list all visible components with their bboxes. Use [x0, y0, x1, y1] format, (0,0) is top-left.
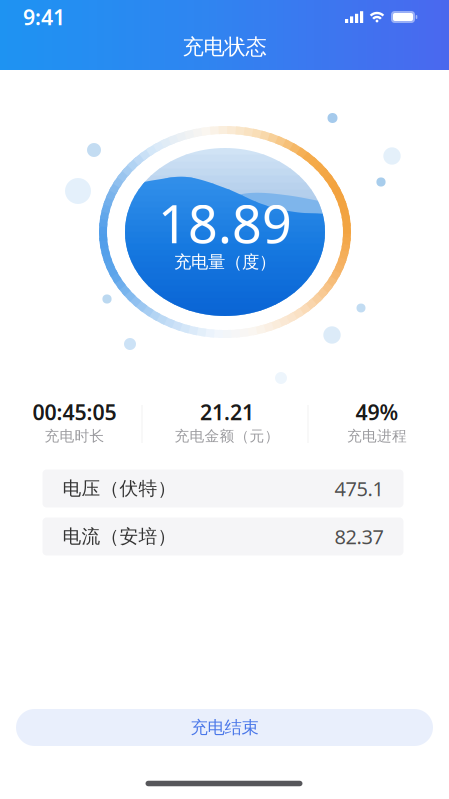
staticText: 充电结束	[190, 717, 258, 738]
staticText: 充电状态	[182, 34, 266, 60]
staticText: 49%	[355, 398, 398, 426]
staticText: 18.89	[158, 188, 292, 258]
staticText: 21.21	[200, 398, 254, 426]
staticText: 82.37	[334, 523, 383, 550]
staticText: 00:45:05	[32, 398, 116, 426]
staticText: 9:41	[23, 3, 65, 31]
staticText: 充电进程	[347, 427, 407, 445]
staticText: 电流（安培）	[62, 525, 176, 548]
staticText: 电压（伏特）	[62, 477, 176, 500]
staticText: 充电金额（元）	[174, 427, 279, 445]
button[interactable]: 充电结束	[16, 709, 433, 746]
staticText: 475.1	[334, 475, 383, 502]
staticText: 充电时长	[44, 427, 104, 445]
staticText: 充电量（度）	[174, 251, 276, 273]
